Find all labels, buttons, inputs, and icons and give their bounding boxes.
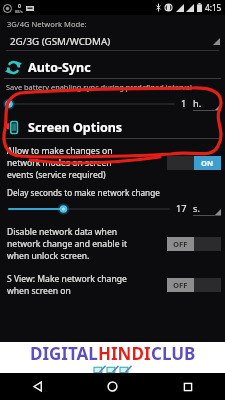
staticText: DIGITAL bbox=[30, 342, 98, 365]
staticText: network modes on screen bbox=[7, 157, 112, 169]
button[interactable]: Disable network data when bbox=[0, 226, 225, 262]
staticText: Disable network data when bbox=[7, 226, 118, 238]
staticText: OFF bbox=[173, 239, 188, 249]
button[interactable]: Recents bbox=[150, 373, 225, 400]
staticText: 2G/3G (GSM/WCDMA) bbox=[10, 35, 213, 48]
staticText: ON bbox=[201, 158, 214, 168]
button[interactable]: S View: Make network change bbox=[0, 273, 225, 297]
button[interactable]: Auto-Sync bbox=[0, 57, 225, 78]
staticText: S View: Make network change bbox=[7, 273, 127, 285]
staticText: s. bbox=[193, 202, 215, 215]
button[interactable]: Toggle, off bbox=[167, 278, 221, 292]
staticText: Screen Options bbox=[28, 119, 123, 136]
staticText: network change and enable it bbox=[7, 238, 128, 250]
button[interactable] bbox=[5, 93, 176, 114]
button[interactable]: Screen Options bbox=[0, 117, 225, 138]
button[interactable]: 2G/3G (GSM/WCDMA) bbox=[0, 33, 225, 50]
other: Auto-Sync bbox=[6, 60, 21, 75]
button[interactable]: Toggle, on bbox=[167, 156, 221, 170]
staticText: 17 bbox=[176, 202, 187, 215]
staticText: when unlock screen. bbox=[7, 250, 90, 262]
button[interactable]: Allow to make changes on bbox=[0, 145, 225, 181]
staticText: CLUB bbox=[151, 342, 196, 365]
staticText: KB/s bbox=[15, 9, 23, 14]
button[interactable]: s. bbox=[193, 202, 221, 216]
staticText: Allow to make changes on bbox=[7, 145, 113, 157]
staticText: OFF bbox=[173, 280, 188, 290]
staticText: HINDI bbox=[98, 342, 151, 365]
staticText: events (service required) bbox=[7, 169, 106, 181]
button[interactable] bbox=[5, 198, 171, 219]
staticText: when screen on bbox=[7, 285, 71, 297]
other: Screen Options bbox=[6, 120, 21, 135]
staticText: 4:15 bbox=[205, 2, 222, 13]
staticText: h. bbox=[193, 97, 215, 110]
staticText: 3G/4G Network Mode: bbox=[7, 19, 87, 29]
staticText: Delay seconds to make network change bbox=[7, 187, 160, 198]
button[interactable]: Home bbox=[75, 373, 150, 400]
staticText: Save battery enabling sync during predef… bbox=[6, 82, 192, 92]
staticText: 1 bbox=[181, 97, 187, 110]
staticText: Auto-Sync bbox=[28, 59, 91, 76]
button[interactable]: Toggle, off bbox=[167, 237, 221, 251]
staticText: 0 bbox=[18, 2, 21, 9]
button[interactable]: Back bbox=[0, 373, 75, 400]
button[interactable]: h. bbox=[193, 97, 221, 111]
